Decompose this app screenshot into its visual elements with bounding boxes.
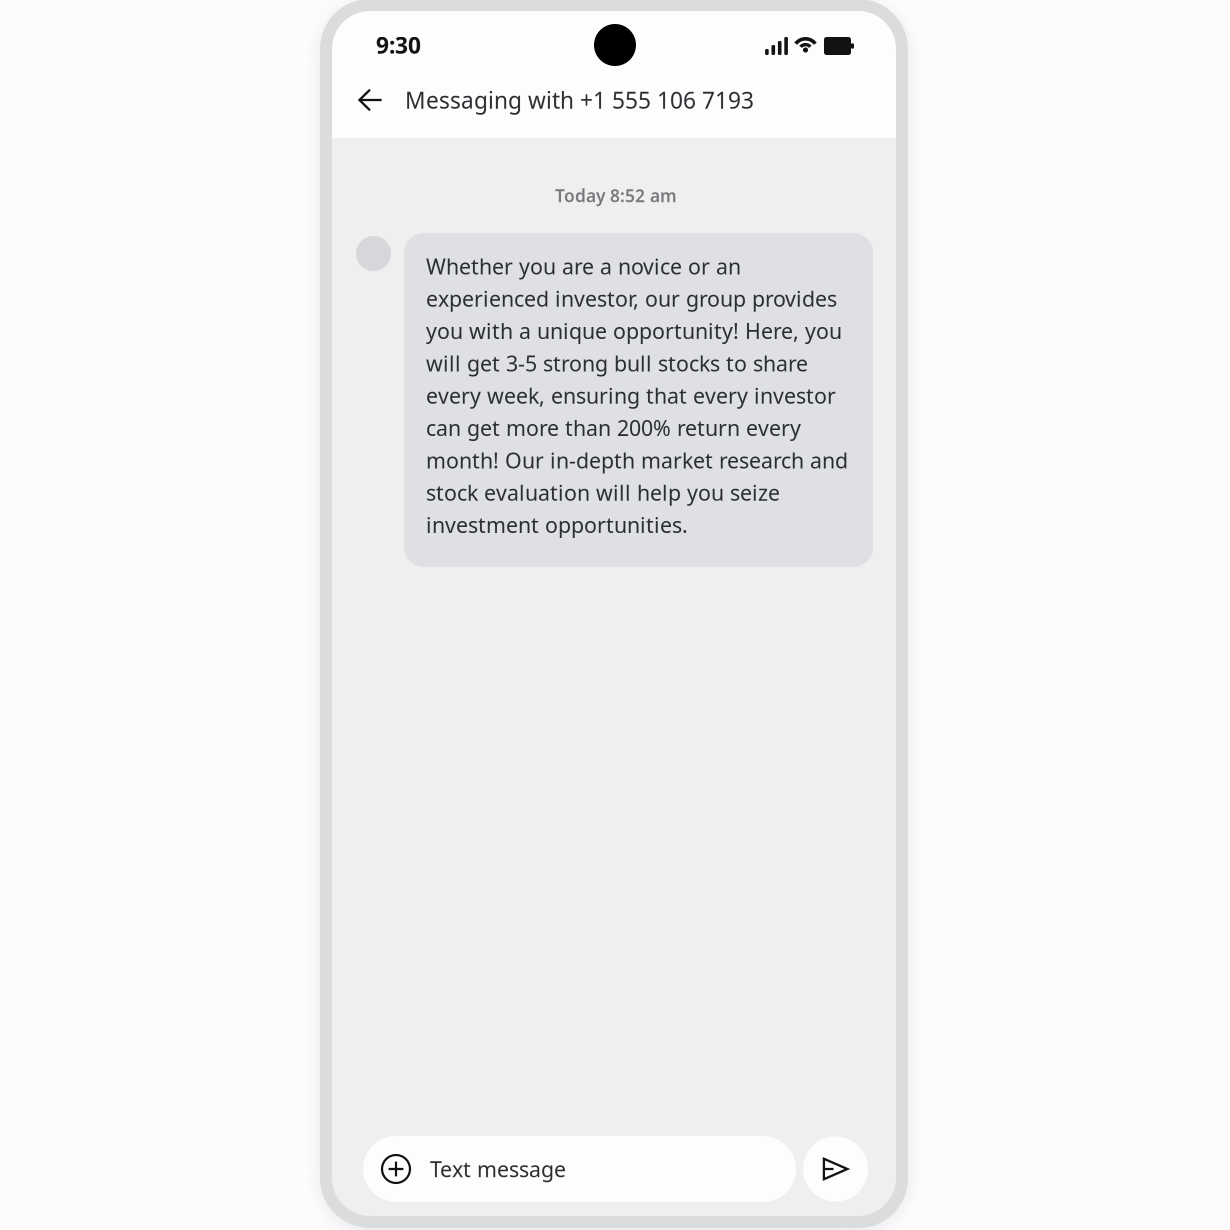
staticText: Today 8:52 am	[555, 184, 677, 207]
button[interactable]: Text message	[363, 1136, 796, 1202]
staticText: Text message	[430, 1155, 566, 1183]
staticText: 9:30	[376, 30, 421, 60]
staticText: Messaging with +1 555 106 7193	[405, 85, 754, 115]
button[interactable]: Send	[803, 1136, 868, 1202]
button[interactable]: Back	[348, 78, 392, 122]
staticText: Whether you are a novice or an experienc…	[426, 252, 848, 539]
